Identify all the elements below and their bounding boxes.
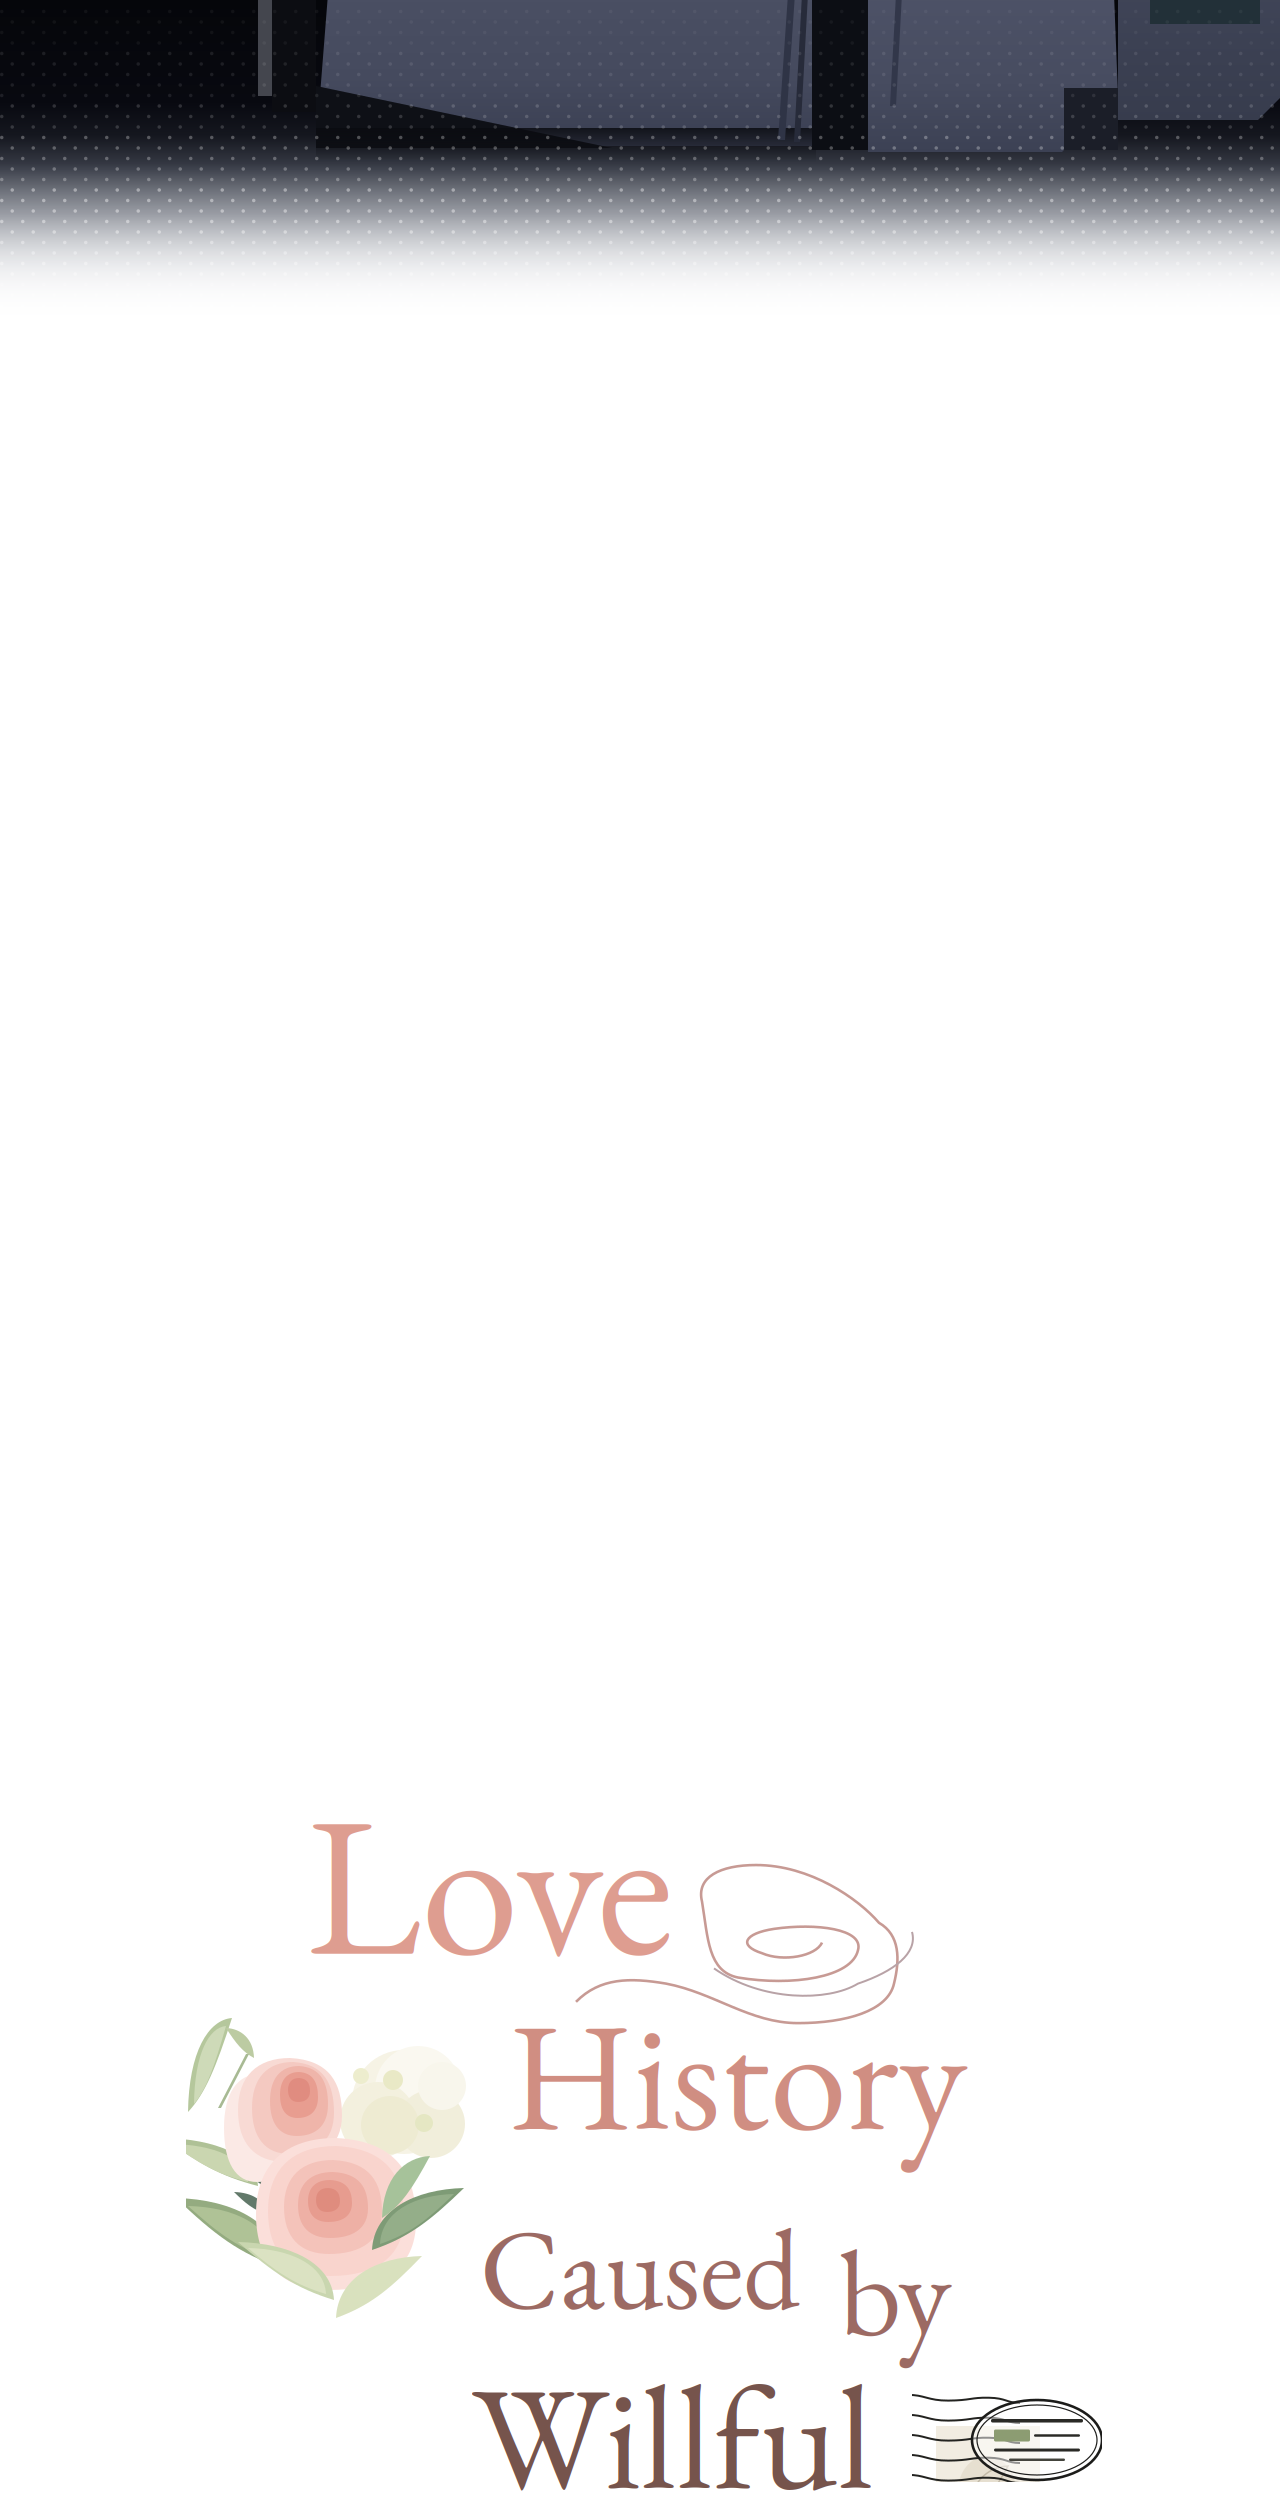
staticText: Willful bbox=[472, 2339, 874, 2500]
staticText: Caused bbox=[480, 2195, 800, 2341]
staticText: Love bbox=[306, 1754, 674, 2011]
staticText: History bbox=[508, 1973, 967, 2175]
staticText: by bbox=[839, 2212, 951, 2370]
